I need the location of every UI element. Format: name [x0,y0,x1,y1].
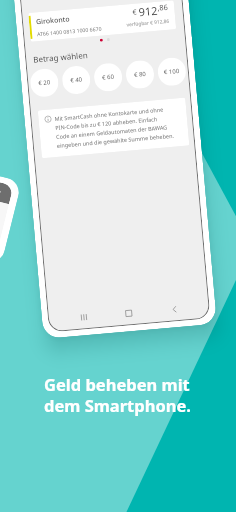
staticText: verfügbar € 912,86 [126,18,170,28]
staticText: € [132,7,138,18]
button[interactable]: € 20 [29,68,59,98]
button[interactable]: € 100 [157,56,187,87]
staticText: € 80 [134,70,146,79]
button[interactable]: Home [118,302,140,324]
button[interactable]: Girokonto [28,0,176,42]
staticText: € 100 [164,67,180,76]
button[interactable]: Back [164,298,185,320]
staticText: Mit SmartCash ohne Kontokarte und ohne P… [54,105,175,150]
staticText: 912 [138,3,158,19]
staticText: € 20 [38,78,51,87]
button[interactable]: € 60 [93,62,123,92]
staticText: Geld beheben mit dem Smartphone. [44,373,191,417]
staticText: Girokonto [36,14,70,27]
staticText: € 60 [102,73,114,82]
button[interactable]: € 80 [125,59,155,90]
button[interactable]: € 40 [61,65,91,95]
staticText: ,86 [157,2,169,13]
staticText: € 40 [70,75,83,84]
staticText: AT66 1400 0813 1000 6670 [37,25,102,37]
button[interactable]: Recents [73,306,95,328]
staticText: Betrag wählen [33,49,88,65]
